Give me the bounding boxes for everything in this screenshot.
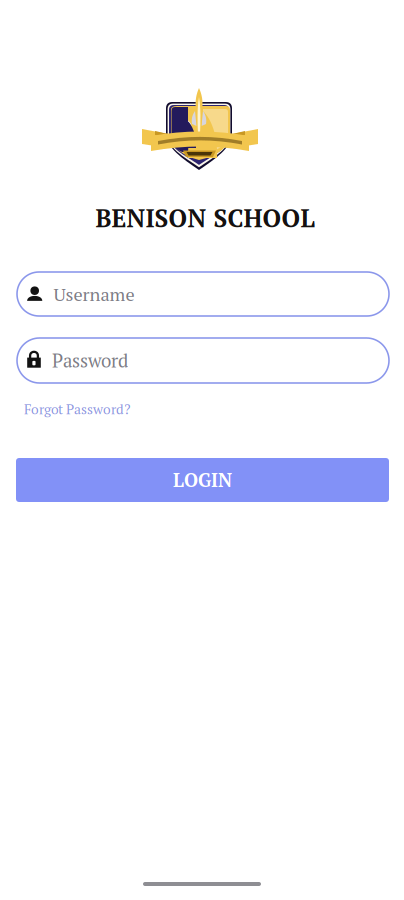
button[interactable]: Username	[17, 272, 389, 316]
staticText: Forgot Password?	[24, 400, 130, 418]
staticText: BENISON SCHOOL	[95, 202, 314, 234]
button[interactable]: LOGIN	[16, 458, 389, 502]
staticText: Password	[52, 348, 128, 373]
button[interactable]: Password	[17, 338, 389, 383]
staticText: LOGIN	[173, 468, 232, 492]
staticText: Username	[53, 282, 134, 306]
button[interactable]: Forgot Password?	[24, 400, 130, 418]
